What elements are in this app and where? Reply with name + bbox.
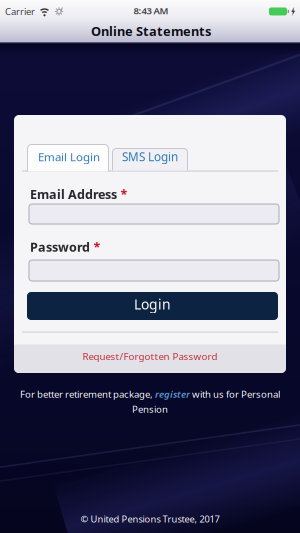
staticText: Password bbox=[30, 238, 90, 255]
staticText: Email Login bbox=[38, 149, 100, 165]
staticText: * bbox=[120, 185, 127, 203]
staticText: Carrier bbox=[5, 5, 35, 18]
staticText: Login bbox=[134, 295, 171, 313]
staticText: © United Pensions Trustee, 2017 bbox=[80, 513, 219, 525]
staticText: * bbox=[93, 238, 100, 255]
staticText: register bbox=[155, 387, 190, 401]
staticText: Request/Forgotten Password bbox=[82, 350, 217, 363]
staticText: with us for Personal bbox=[190, 387, 280, 401]
staticText: Online Statements bbox=[91, 22, 211, 40]
staticText: SMS Login bbox=[122, 149, 178, 165]
staticText: Email Address bbox=[30, 185, 117, 203]
staticText: Pension bbox=[132, 402, 168, 416]
staticText: 8:43 AM bbox=[133, 4, 168, 17]
staticText: For better retirement package, bbox=[20, 387, 155, 401]
